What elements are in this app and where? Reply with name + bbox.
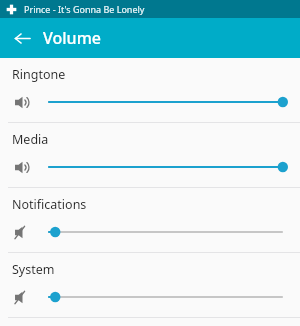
staticText: Ringtone [12, 66, 66, 83]
staticText: Prince - It's Gonna Be Lonely [24, 3, 145, 15]
button[interactable]: Back [6, 22, 38, 54]
button[interactable]: Media [0, 123, 300, 188]
button[interactable]: Notifications [0, 188, 300, 253]
staticText: Media [12, 131, 49, 148]
button[interactable]: System [0, 253, 300, 318]
staticText: Notifications [12, 196, 87, 213]
staticText: System [12, 261, 55, 278]
staticText: Volume [43, 27, 101, 49]
button[interactable]: Ringtone [0, 58, 300, 123]
